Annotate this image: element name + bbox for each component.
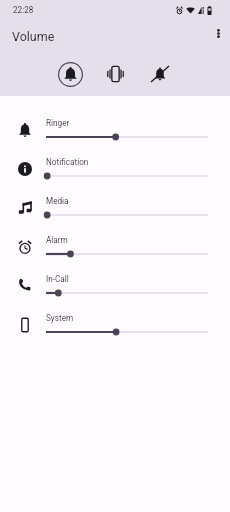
button[interactable]: In-Call: [0, 273, 230, 312]
button[interactable]: Alarm: [0, 234, 230, 273]
staticText: In-Call: [46, 274, 69, 284]
staticText: Alarm: [46, 235, 68, 245]
staticText: Notification: [46, 157, 89, 167]
button[interactable]: Silent: [143, 57, 177, 91]
staticText: 22:28: [13, 5, 34, 15]
button[interactable]: System: [0, 312, 230, 351]
button[interactable]: More options: [205, 20, 230, 46]
button[interactable]: Media: [0, 195, 230, 234]
staticText: Media: [46, 196, 69, 206]
staticText: System: [46, 313, 74, 323]
button[interactable]: Ringer: [0, 117, 230, 156]
button[interactable]: Vibrate: [98, 57, 132, 91]
button[interactable]: Ring: [53, 57, 87, 91]
staticText: Ringer: [46, 118, 70, 128]
button[interactable]: Notification: [0, 156, 230, 195]
staticText: Volume: [12, 29, 55, 44]
